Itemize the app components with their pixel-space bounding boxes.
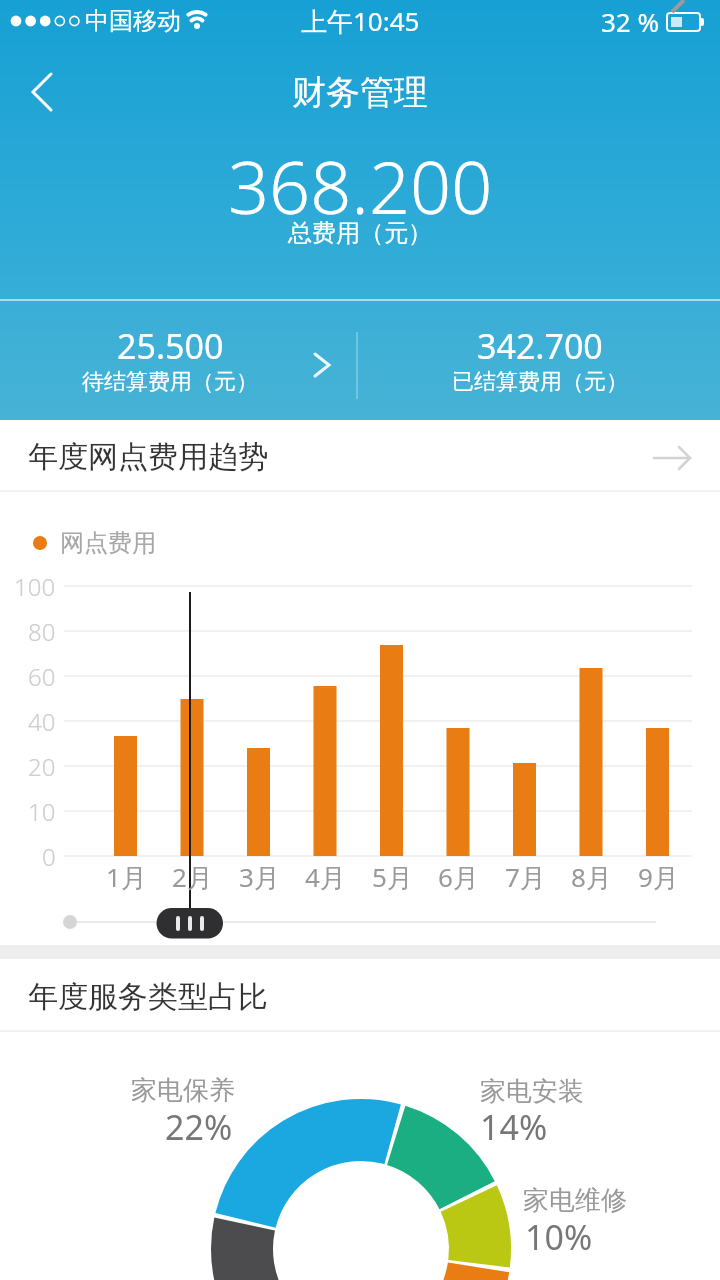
staticText: 100 xyxy=(14,570,56,603)
staticText: 22% xyxy=(165,1104,233,1150)
staticText: 家电保养 xyxy=(131,1074,235,1107)
button[interactable] xyxy=(0,300,357,420)
staticText: 9月 xyxy=(638,859,679,895)
button[interactable] xyxy=(358,300,720,420)
staticText: 10 xyxy=(28,795,56,828)
staticText: 待结算费用（元） xyxy=(82,368,258,396)
staticText: 25.500 xyxy=(117,323,224,369)
staticText: 7月 xyxy=(505,859,546,895)
staticText: 10% xyxy=(525,1214,593,1260)
staticText: 3月 xyxy=(239,859,280,895)
staticText: 60 xyxy=(28,660,56,693)
button[interactable] xyxy=(156,908,223,939)
staticText: 4月 xyxy=(305,859,346,895)
staticText: 年度网点费用趋势 xyxy=(28,438,268,476)
staticText: 家电维修 xyxy=(523,1184,627,1217)
staticText: 2月 xyxy=(172,859,213,895)
staticText: 0 xyxy=(42,840,56,873)
staticText: 总费用（元） xyxy=(288,218,432,248)
staticText: 40 xyxy=(28,705,56,738)
staticText: 已结算费用（元） xyxy=(452,368,628,396)
staticText: 14% xyxy=(480,1104,548,1150)
staticText: 32 % xyxy=(601,4,660,39)
staticText: 上午10:45 xyxy=(301,3,420,39)
button[interactable] xyxy=(0,418,720,492)
staticText: 中国移动 xyxy=(85,6,181,36)
button[interactable] xyxy=(12,64,72,120)
staticText: 财务管理 xyxy=(292,71,428,114)
staticText: 年度服务类型占比 xyxy=(28,978,268,1016)
staticText: 80 xyxy=(28,615,56,648)
staticText: 家电安装 xyxy=(480,1075,584,1108)
staticText: 8月 xyxy=(571,859,612,895)
staticText: 342.700 xyxy=(477,323,603,369)
staticText: 6月 xyxy=(438,859,479,895)
staticText: 368.200 xyxy=(228,137,493,235)
staticText: 1月 xyxy=(106,859,147,895)
staticText: 网点费用 xyxy=(60,528,156,558)
staticText: 20 xyxy=(28,750,56,783)
staticText: 5月 xyxy=(372,859,413,895)
